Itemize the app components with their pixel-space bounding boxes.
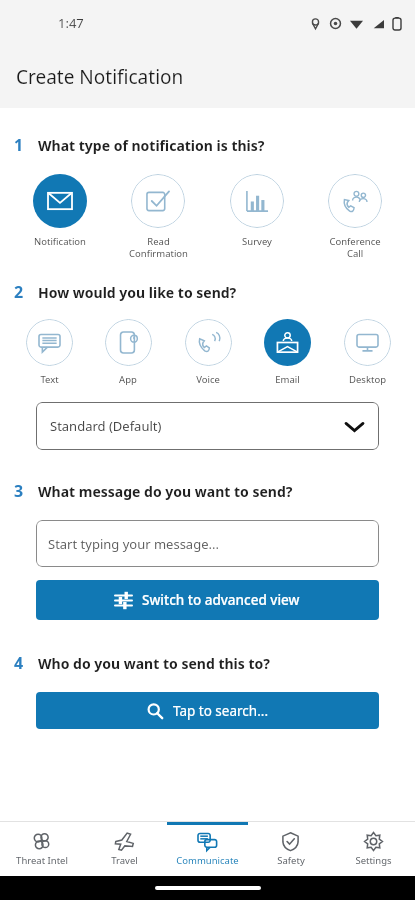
staticText: Safety: [277, 854, 305, 867]
button[interactable]: Desktop: [332, 319, 402, 386]
staticText: Text: [40, 373, 59, 386]
button[interactable]: Safety: [249, 822, 332, 876]
staticText: Voice: [196, 373, 220, 386]
staticText: Create Notification: [16, 64, 184, 90]
staticText: 4: [14, 652, 24, 674]
button[interactable]: Conference Call: [311, 174, 399, 259]
staticText: What message do you want to send?: [38, 482, 293, 501]
staticText: Standard (Default): [50, 417, 162, 435]
button[interactable]: Start typing your message...: [36, 520, 379, 567]
button[interactable]: Notification: [16, 174, 104, 248]
staticText: How would you like to send?: [38, 283, 237, 302]
button[interactable]: App: [93, 319, 163, 386]
staticText: Read Confirmation: [129, 235, 188, 259]
button[interactable]: Settings: [332, 822, 415, 876]
staticText: Start typing your message...: [48, 535, 219, 553]
staticText: Tap to search...: [173, 702, 268, 720]
staticText: Desktop: [349, 373, 386, 386]
staticText: 1:47: [58, 14, 84, 32]
staticText: Threat Intel: [16, 854, 68, 867]
button[interactable]: Email: [252, 319, 322, 386]
staticText: Switch to advanced view: [142, 591, 300, 609]
staticText: App: [119, 373, 137, 386]
staticText: 2: [14, 281, 24, 303]
staticText: Who do you want to send this to?: [38, 654, 270, 673]
button[interactable]: Survey: [213, 174, 301, 248]
button[interactable]: Text: [14, 319, 84, 386]
button[interactable]: Communicate: [166, 822, 249, 876]
button[interactable]: Read Confirmation: [114, 174, 202, 259]
staticText: Communicate: [176, 854, 239, 867]
staticText: Notification: [34, 235, 86, 248]
button[interactable]: Standard (Default): [36, 402, 379, 450]
staticText: What type of notification is this?: [38, 136, 265, 155]
staticText: Travel: [111, 854, 138, 867]
staticText: Settings: [355, 854, 392, 867]
staticText: Email: [275, 373, 300, 386]
button[interactable]: Threat Intel: [0, 822, 83, 876]
button[interactable]: Tap to search...: [36, 692, 379, 729]
staticText: Conference Call: [329, 235, 381, 259]
button[interactable]: Switch to advanced view: [36, 580, 379, 620]
staticText: Survey: [242, 235, 272, 248]
button[interactable]: Travel: [83, 822, 166, 876]
button[interactable]: Voice: [173, 319, 243, 386]
staticText: 3: [14, 480, 24, 502]
other: Expand: [346, 418, 363, 435]
staticText: 1: [14, 134, 24, 156]
